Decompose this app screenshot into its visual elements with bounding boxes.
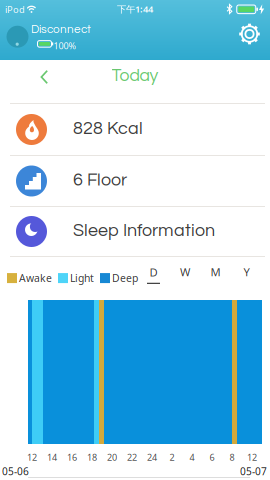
staticText: 24 [147, 451, 157, 463]
staticText: 14 [47, 451, 57, 463]
staticText: 100% [53, 40, 76, 52]
staticText: Light [70, 271, 94, 285]
button[interactable]: M [207, 265, 223, 279]
staticText: 4 [189, 451, 194, 463]
staticText: Sleep Information [73, 221, 215, 240]
button[interactable]: Y [238, 265, 254, 279]
button[interactable] [36, 67, 55, 86]
staticText: 20 [107, 451, 117, 463]
button[interactable]: W [177, 265, 193, 279]
button[interactable]: D [147, 264, 160, 284]
button[interactable]: Disconnect [6, 22, 111, 54]
staticText: Today [111, 66, 158, 85]
staticText: D [149, 264, 157, 280]
staticText: 6 [209, 451, 214, 463]
button[interactable]: 828 Kcal [0, 104, 270, 155]
staticText: 6 Floor [73, 171, 127, 189]
staticText: 8 [229, 451, 234, 463]
button[interactable]: 6 Floor [0, 156, 270, 206]
staticText: 16 [67, 451, 77, 463]
staticText: 12 [247, 451, 257, 463]
staticText: Awake [19, 271, 52, 285]
staticText: 05-07 [240, 464, 267, 478]
staticText: Y [243, 264, 249, 280]
staticText: Disconnect [31, 23, 91, 36]
staticText: 05-06 [2, 464, 29, 478]
staticText: 18 [87, 451, 97, 463]
staticText: 828 Kcal [73, 119, 143, 138]
button[interactable] [238, 22, 261, 45]
staticText: iPod [5, 3, 25, 16]
staticText: M [210, 264, 220, 280]
staticText: W [180, 264, 190, 280]
staticText: 12 [27, 451, 37, 463]
staticText: 22 [127, 451, 137, 463]
button[interactable]: Sleep Information [0, 207, 270, 256]
staticText: 下午1:44 [117, 3, 153, 15]
staticText: Deep [112, 271, 138, 285]
staticText: 2 [169, 451, 174, 463]
